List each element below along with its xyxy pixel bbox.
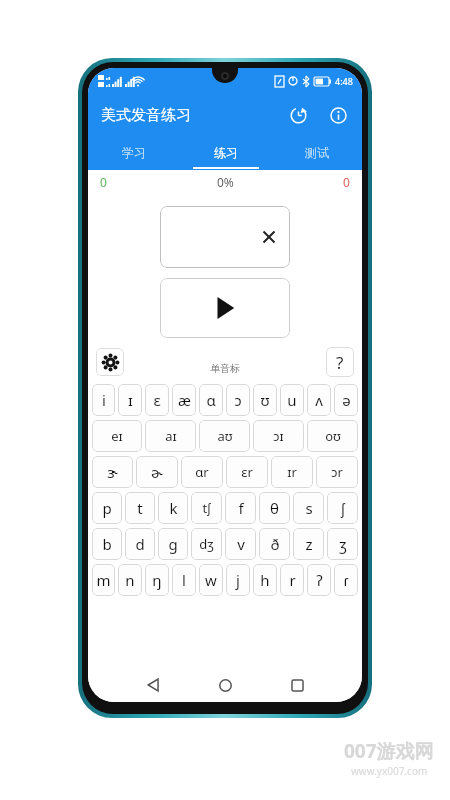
button[interactable]: ɛr bbox=[226, 456, 268, 488]
button[interactable]: Settings bbox=[96, 348, 124, 376]
staticText: dʒ bbox=[199, 535, 214, 553]
staticText: ʊ bbox=[260, 390, 270, 410]
staticText: ɪ bbox=[128, 390, 133, 410]
staticText: ɔ bbox=[234, 390, 242, 410]
button[interactable]: g bbox=[158, 528, 188, 560]
button[interactable]: ɾ bbox=[334, 564, 358, 596]
button[interactable]: Home bbox=[212, 672, 238, 698]
button[interactable]: 测试 bbox=[271, 136, 362, 170]
button[interactable]: Play bbox=[160, 278, 290, 338]
staticText: ɚ bbox=[151, 462, 163, 482]
button[interactable]: v bbox=[225, 528, 256, 560]
button[interactable]: ʊ bbox=[253, 384, 277, 416]
staticText: 美式发音练习 bbox=[101, 106, 191, 125]
staticText: k bbox=[169, 498, 178, 518]
button[interactable]: 练习 bbox=[180, 136, 271, 170]
button[interactable]: ɔɪ bbox=[253, 420, 304, 452]
button[interactable]: f bbox=[225, 492, 256, 524]
staticText: b bbox=[102, 534, 112, 554]
button[interactable]: Recents bbox=[284, 672, 310, 698]
staticText: ɾ bbox=[343, 570, 349, 590]
button[interactable]: aɪ bbox=[145, 420, 196, 452]
button[interactable]: ʔ bbox=[307, 564, 331, 596]
button[interactable]: ɔ bbox=[226, 384, 250, 416]
button[interactable]: ð bbox=[259, 528, 290, 560]
staticText: ɑ bbox=[206, 390, 216, 410]
staticText: t bbox=[137, 498, 143, 518]
button[interactable]: ŋ bbox=[145, 564, 169, 596]
staticText: eɪ bbox=[111, 427, 123, 445]
button[interactable]: 学习 bbox=[88, 136, 180, 170]
staticText: aɪ bbox=[165, 427, 177, 445]
button[interactable]: m bbox=[92, 564, 115, 596]
staticText: tʃ bbox=[202, 499, 211, 517]
staticText: 0 bbox=[100, 174, 107, 190]
staticText: ɪr bbox=[287, 463, 297, 481]
staticText: u bbox=[287, 390, 297, 410]
staticText: s bbox=[305, 498, 313, 518]
staticText: ə bbox=[342, 390, 351, 410]
button[interactable]: b bbox=[92, 528, 122, 560]
staticText: 学习 bbox=[122, 145, 146, 160]
staticText: oʊ bbox=[325, 427, 341, 445]
button[interactable]: t bbox=[125, 492, 155, 524]
button[interactable]: ʒ bbox=[327, 528, 358, 560]
staticText: aʊ bbox=[217, 427, 233, 445]
staticText: r bbox=[289, 570, 296, 590]
staticText: ɔr bbox=[331, 463, 343, 481]
button[interactable]: i bbox=[92, 384, 115, 416]
button[interactable]: ɑr bbox=[181, 456, 223, 488]
button[interactable]: Help bbox=[326, 347, 354, 377]
button[interactable]: Clear bbox=[160, 206, 290, 268]
button[interactable]: ɑ bbox=[199, 384, 223, 416]
staticText: d bbox=[135, 534, 145, 554]
staticText: ʌ bbox=[315, 390, 323, 410]
button[interactable]: r bbox=[280, 564, 304, 596]
staticText: ? bbox=[336, 351, 344, 374]
button[interactable]: n bbox=[118, 564, 142, 596]
button[interactable]: ɚ bbox=[136, 456, 178, 488]
button[interactable]: tʃ bbox=[191, 492, 222, 524]
staticText: n bbox=[125, 570, 135, 590]
staticText: ɝ bbox=[107, 462, 118, 482]
button[interactable]: k bbox=[158, 492, 188, 524]
staticText: 007游戏网 bbox=[344, 738, 434, 764]
button[interactable]: eɪ bbox=[92, 420, 142, 452]
button[interactable]: h bbox=[253, 564, 277, 596]
staticText: l bbox=[182, 570, 186, 590]
staticText: 练习 bbox=[214, 145, 238, 160]
staticText: ŋ bbox=[152, 570, 162, 590]
button[interactable]: æ bbox=[172, 384, 196, 416]
button[interactable]: p bbox=[92, 492, 122, 524]
staticText: ʔ bbox=[316, 570, 323, 590]
button[interactable]: Info bbox=[326, 103, 350, 127]
button[interactable]: w bbox=[199, 564, 223, 596]
staticText: 0 bbox=[343, 174, 350, 190]
staticText: ʃ bbox=[341, 498, 345, 518]
button[interactable]: s bbox=[293, 492, 324, 524]
button[interactable]: d bbox=[125, 528, 155, 560]
button[interactable]: ɪ bbox=[118, 384, 142, 416]
staticText: f bbox=[238, 498, 244, 518]
button[interactable]: Back bbox=[140, 672, 166, 698]
button[interactable]: ʌ bbox=[307, 384, 331, 416]
button[interactable]: z bbox=[293, 528, 324, 560]
staticText: ɑr bbox=[195, 463, 209, 481]
button[interactable]: ʃ bbox=[327, 492, 358, 524]
staticText: ɛr bbox=[241, 463, 253, 481]
button[interactable]: aʊ bbox=[199, 420, 250, 452]
button[interactable]: oʊ bbox=[307, 420, 358, 452]
button[interactable]: ɝ bbox=[92, 456, 133, 488]
staticText: 0% bbox=[217, 174, 234, 190]
button[interactable]: ɔr bbox=[316, 456, 358, 488]
button[interactable]: ɛ bbox=[145, 384, 169, 416]
button[interactable]: ɪr bbox=[271, 456, 313, 488]
button[interactable]: l bbox=[172, 564, 196, 596]
button[interactable]: j bbox=[226, 564, 250, 596]
button[interactable]: ə bbox=[334, 384, 358, 416]
button[interactable]: dʒ bbox=[191, 528, 222, 560]
button[interactable]: History bbox=[286, 103, 310, 127]
button[interactable]: θ bbox=[259, 492, 290, 524]
staticText: h bbox=[260, 570, 270, 590]
button[interactable]: u bbox=[280, 384, 304, 416]
